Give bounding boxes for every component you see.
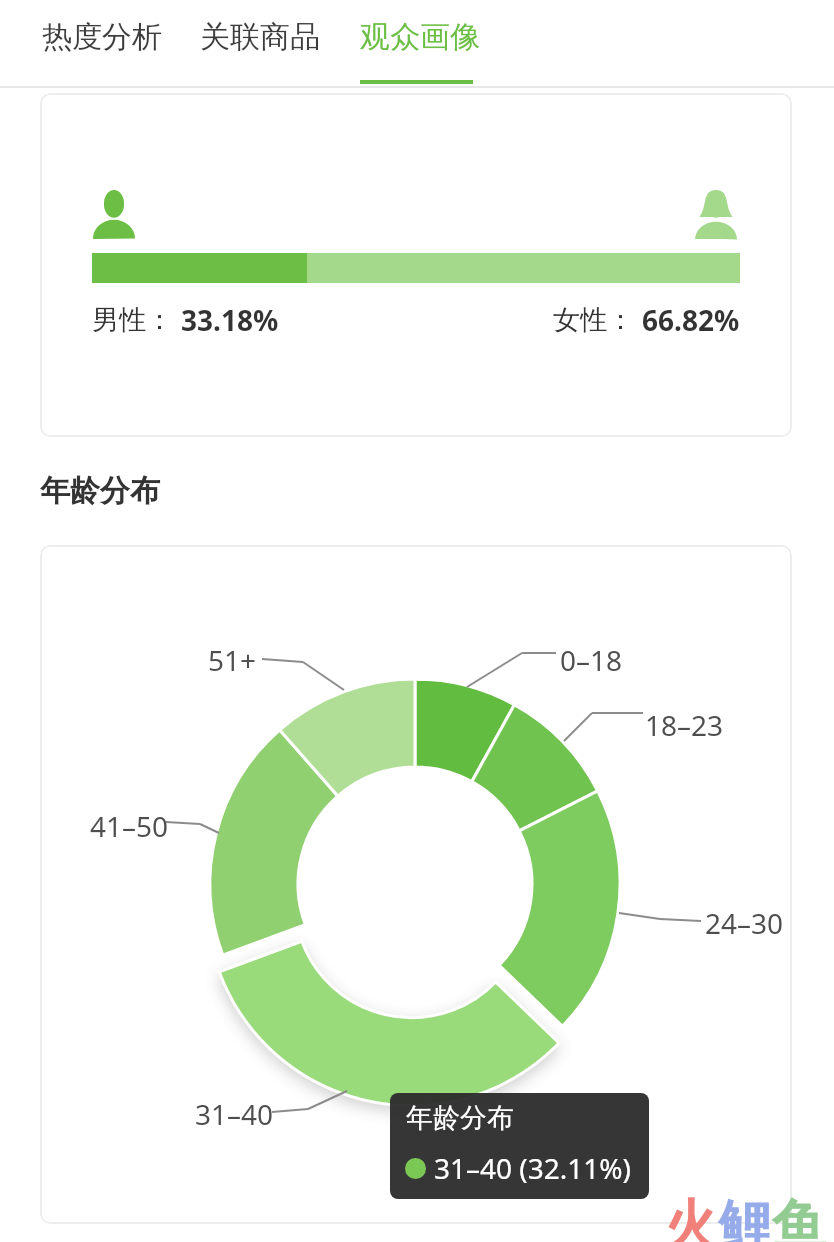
button[interactable]: 热度分析 xyxy=(38,14,166,60)
staticText: 31–40 xyxy=(195,1095,274,1133)
staticText: 33.18% xyxy=(181,301,279,339)
staticText: 年龄分布 xyxy=(406,1101,514,1135)
staticText: 31–40 (32.11%) xyxy=(434,1149,631,1187)
staticText: 火 xyxy=(664,1192,718,1242)
staticText: 18–23 xyxy=(645,706,724,744)
staticText: 24–30 xyxy=(705,904,784,942)
staticText: 女性： xyxy=(553,303,634,337)
staticText: 男性： xyxy=(92,303,173,337)
button[interactable]: 关联商品 xyxy=(196,14,324,60)
staticText: 鱼 xyxy=(772,1192,826,1242)
staticText: 鲤 xyxy=(718,1192,772,1242)
staticText: 年龄分布 xyxy=(40,472,160,510)
button[interactable]: 观众画像 xyxy=(356,14,484,60)
staticText: 0–18 xyxy=(560,641,623,679)
staticText: 观众画像 xyxy=(360,18,480,56)
staticText: 关联商品 xyxy=(200,18,320,56)
staticText: 66.82% xyxy=(642,301,740,339)
staticText: 热度分析 xyxy=(42,18,162,56)
staticText: 41–50 xyxy=(90,807,169,845)
staticText: 51+ xyxy=(208,641,257,679)
